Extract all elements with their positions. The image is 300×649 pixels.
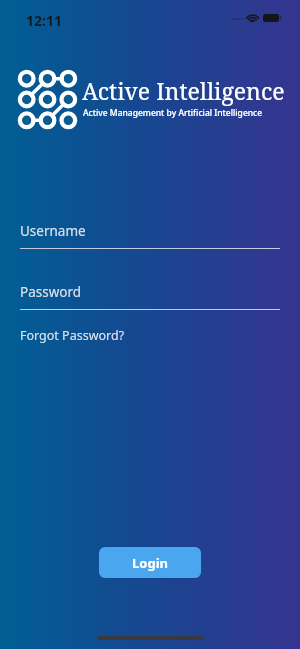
other: Active Intelligence logo [19, 71, 76, 128]
button[interactable]: Login [99, 547, 201, 578]
staticText: Active Management by Artificial Intellig… [83, 107, 263, 119]
button[interactable]: Username [20, 222, 280, 249]
button[interactable]: Forgot Password? [20, 327, 125, 344]
staticText: Forgot Password? [20, 327, 125, 344]
staticText: Password [20, 283, 82, 301]
button[interactable]: Password [20, 283, 280, 310]
staticText: Active Intelligence [82, 75, 285, 106]
staticText: Login [132, 554, 168, 572]
staticText: Username [20, 222, 86, 240]
staticText: 12:11 [26, 11, 62, 30]
